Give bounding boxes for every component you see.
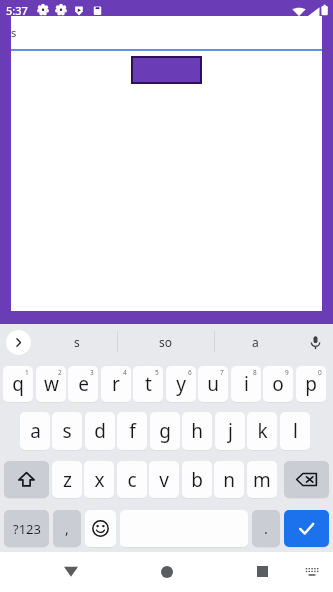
button[interactable]: o — [263, 366, 293, 402]
staticText: 1 — [25, 368, 29, 377]
button[interactable]: Voice input — [298, 324, 333, 360]
staticText: p — [305, 371, 317, 397]
button[interactable]: Comma — [53, 510, 81, 547]
button[interactable]: y — [166, 366, 196, 402]
staticText: w — [44, 371, 59, 397]
staticText: a — [30, 418, 41, 444]
button[interactable] — [131, 56, 202, 84]
button[interactable]: Show more suggestions — [6, 330, 31, 355]
staticText: h — [191, 418, 203, 444]
staticText: , — [65, 519, 69, 538]
staticText: x — [94, 467, 105, 493]
staticText: r — [112, 371, 120, 397]
button[interactable]: t — [133, 366, 163, 402]
button[interactable]: m — [247, 461, 277, 498]
staticText: so — [159, 334, 173, 350]
staticText: q — [12, 371, 24, 397]
button[interactable]: j — [215, 412, 245, 450]
staticText: t — [145, 371, 152, 397]
button[interactable]: p — [296, 366, 326, 402]
staticText: f — [129, 418, 136, 444]
button[interactable]: l — [280, 412, 310, 450]
button[interactable]: Back — [56, 557, 85, 586]
staticText: s — [62, 418, 72, 444]
staticText: 6 — [188, 368, 192, 377]
staticText: 5 — [155, 368, 159, 377]
button[interactable]: s — [52, 412, 82, 450]
staticText: 7 — [220, 368, 224, 377]
staticText: 5:37 — [6, 3, 28, 16]
button[interactable]: Symbols — [4, 510, 49, 547]
staticText: o — [272, 371, 284, 397]
button[interactable]: v — [149, 461, 179, 498]
staticText: 8 — [253, 368, 257, 377]
button[interactable]: Period — [252, 510, 280, 547]
staticText: s — [74, 334, 80, 350]
staticText: g — [159, 418, 171, 444]
button[interactable]: Enter — [284, 510, 329, 547]
button[interactable]: e — [68, 366, 98, 402]
staticText: n — [223, 467, 235, 493]
button[interactable]: q — [3, 366, 33, 402]
staticText: u — [207, 371, 219, 397]
staticText: 9 — [285, 368, 289, 377]
button[interactable]: z — [52, 461, 82, 498]
staticText: a — [252, 334, 259, 350]
button[interactable]: x — [84, 461, 114, 498]
staticText: . — [264, 519, 268, 538]
button[interactable]: Recents — [248, 557, 277, 586]
button[interactable]: h — [182, 412, 212, 450]
button[interactable]: Shift — [4, 461, 49, 498]
button[interactable]: Home — [152, 557, 181, 586]
staticText: 4 — [123, 368, 127, 377]
button[interactable]: c — [117, 461, 147, 498]
staticText: k — [257, 418, 268, 444]
staticText: c — [127, 467, 137, 493]
button[interactable]: n — [214, 461, 244, 498]
staticText: j — [228, 418, 233, 444]
button[interactable]: Emoji — [85, 510, 116, 547]
staticText: 2 — [58, 368, 62, 377]
button[interactable]: so — [118, 324, 214, 360]
staticText: s — [11, 25, 17, 40]
staticText: 0 — [318, 368, 322, 377]
staticText: z — [63, 467, 72, 493]
button[interactable]: Hide keyboard — [297, 557, 326, 586]
button[interactable]: f — [117, 412, 147, 450]
button[interactable]: r — [101, 366, 131, 402]
staticText: y — [176, 371, 186, 397]
staticText: v — [159, 467, 169, 493]
staticText: m — [253, 467, 271, 493]
button[interactable]: s — [36, 324, 117, 360]
button[interactable]: d — [85, 412, 115, 450]
button[interactable]: u — [198, 366, 228, 402]
button[interactable]: i — [231, 366, 261, 402]
staticText: b — [191, 467, 203, 493]
button[interactable]: a — [215, 324, 295, 360]
button[interactable]: w — [36, 366, 66, 402]
staticText: l — [293, 418, 298, 444]
staticText: i — [244, 371, 249, 397]
staticText: 3 — [90, 368, 94, 377]
button[interactable]: k — [247, 412, 277, 450]
button[interactable]: Backspace — [284, 461, 329, 498]
button[interactable]: a — [20, 412, 50, 450]
staticText: d — [94, 418, 106, 444]
button[interactable]: g — [150, 412, 180, 450]
button[interactable]: b — [182, 461, 212, 498]
staticText: e — [78, 371, 89, 397]
staticText: ?123 — [13, 520, 41, 538]
